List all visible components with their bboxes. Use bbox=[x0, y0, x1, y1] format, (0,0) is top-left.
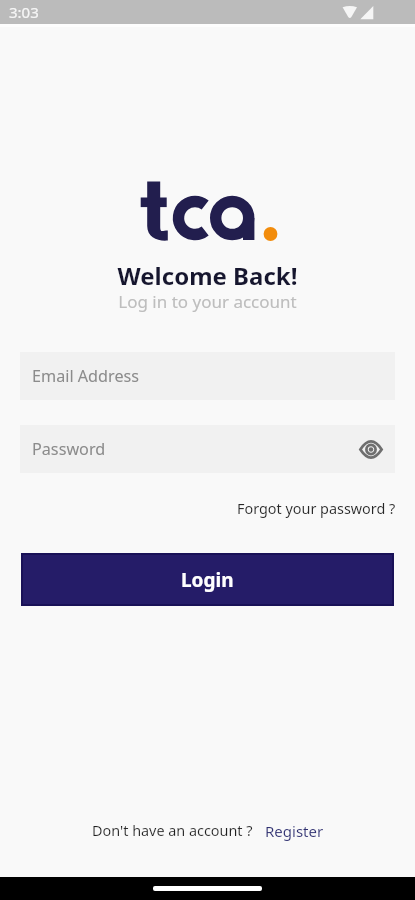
staticText: Welcome Back! bbox=[0, 259, 415, 292]
staticText: Don't have an account ? bbox=[92, 821, 253, 841]
staticText: Log in to your account bbox=[0, 290, 415, 313]
button[interactable]: Login bbox=[21, 553, 394, 606]
staticText: Register bbox=[265, 821, 324, 841]
staticText: Email Address bbox=[32, 365, 140, 387]
button[interactable]: Show password bbox=[354, 432, 388, 466]
staticText: Login bbox=[181, 567, 234, 593]
staticText: Forgot your password ? bbox=[237, 499, 396, 519]
button[interactable]: Forgot your password ? bbox=[231, 496, 402, 522]
button[interactable]: Password bbox=[20, 425, 395, 473]
button[interactable]: Register bbox=[265, 821, 324, 841]
staticText: 3:03 bbox=[9, 2, 39, 22]
button[interactable]: Email Address bbox=[20, 352, 395, 400]
staticText: Password bbox=[32, 438, 106, 460]
